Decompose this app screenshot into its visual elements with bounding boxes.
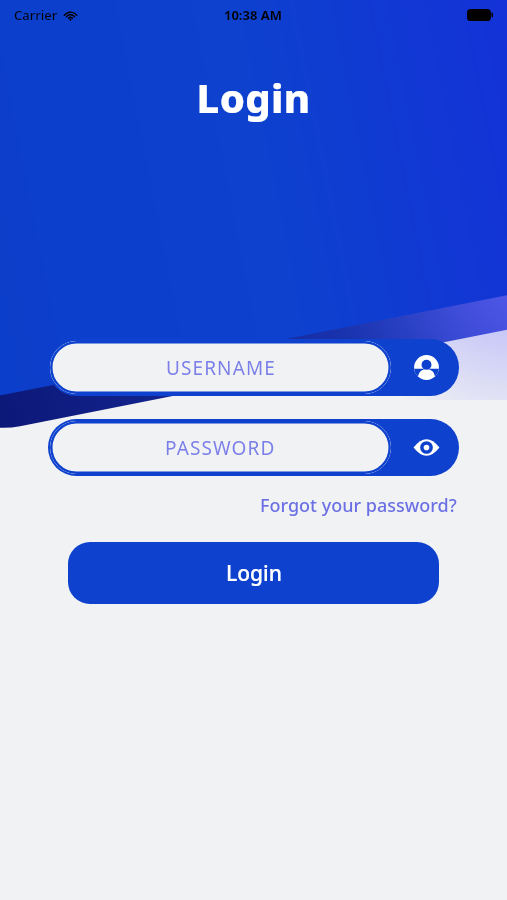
staticText: Carrier bbox=[14, 6, 58, 24]
staticText: Login bbox=[226, 559, 282, 588]
button[interactable]: Account bbox=[393, 339, 459, 396]
staticText: PASSWORD bbox=[165, 435, 276, 461]
staticText: USERNAME bbox=[166, 355, 276, 381]
button[interactable]: USERNAME bbox=[48, 339, 459, 396]
staticText: 10:38 AM bbox=[224, 6, 283, 24]
button[interactable]: Login bbox=[68, 542, 439, 604]
staticText: Forgot your password? bbox=[260, 493, 457, 518]
staticText: Login bbox=[0, 70, 507, 124]
button[interactable]: Forgot your password? bbox=[258, 490, 459, 521]
button[interactable]: Show password bbox=[393, 419, 459, 476]
button[interactable]: PASSWORD bbox=[48, 419, 459, 476]
